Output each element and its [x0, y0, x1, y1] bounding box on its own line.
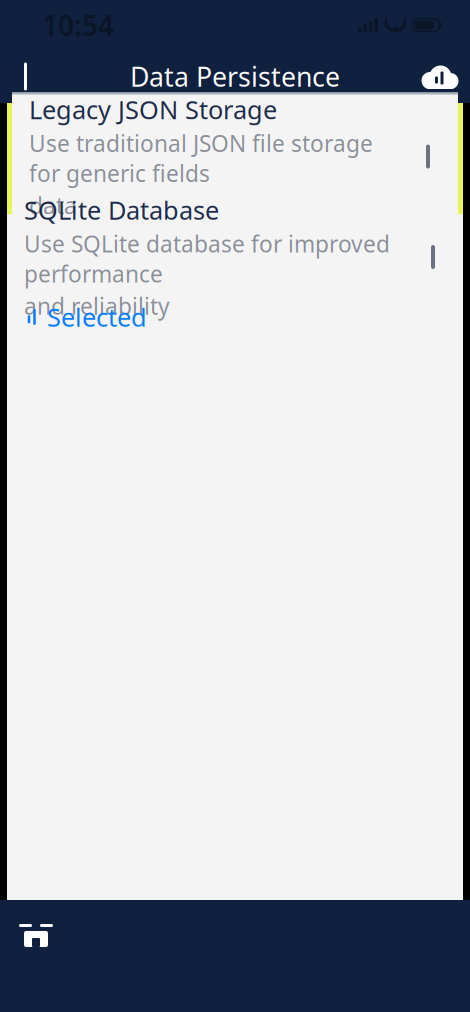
staticText: 10:54 — [42, 6, 114, 44]
staticText: Use traditional JSON file storage for ge… — [29, 128, 373, 188]
staticText: SQLite Database — [24, 193, 219, 227]
staticText: Use SQLite database for improved perform… — [24, 229, 390, 289]
staticText: data — [29, 190, 77, 220]
button[interactable]: Sync status — [410, 50, 470, 103]
button[interactable]: Back — [0, 50, 56, 103]
staticText: Legacy JSON Storage — [29, 92, 277, 126]
staticText: Data Persistence — [130, 59, 340, 94]
staticText: and reliability — [24, 291, 170, 321]
button[interactable]: SQLite Database — [7, 214, 463, 340]
staticText: Selected — [47, 300, 147, 334]
button[interactable]: Home — [0, 905, 72, 961]
button[interactable]: Legacy JSON Storage — [7, 103, 463, 214]
